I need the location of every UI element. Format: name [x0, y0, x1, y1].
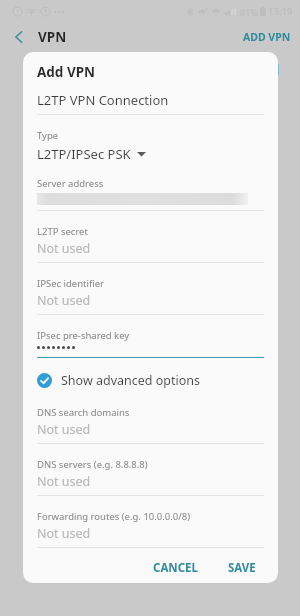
- button[interactable]: SAVE: [220, 554, 264, 582]
- staticText: L2TP secret: [37, 225, 88, 238]
- button[interactable]: IPSec identifier: [23, 277, 278, 315]
- staticText: Server address: [37, 177, 104, 190]
- staticText: DNS servers (e.g. 8.8.8.8): [37, 458, 148, 471]
- button[interactable]: DNS servers (e.g. 8.8.8.8): [23, 458, 278, 496]
- button[interactable]: CANCEL: [145, 554, 206, 582]
- button[interactable]: ADD VPN: [234, 24, 300, 50]
- button[interactable]: L2TP/IPSec PSK: [23, 144, 278, 164]
- button[interactable]: Forwarding routes (e.g. 10.0.0.0/8): [23, 510, 278, 548]
- staticText: ADD VPN: [243, 30, 291, 44]
- button[interactable]: Show advanced options: [23, 369, 278, 392]
- staticText: Not used: [37, 292, 91, 309]
- staticText: Show advanced options: [61, 372, 201, 389]
- staticText: Not used: [37, 473, 91, 490]
- staticText: 81%: [240, 6, 258, 18]
- button[interactable]: Back: [8, 26, 30, 48]
- staticText: Type: [37, 129, 59, 142]
- staticText: L2TP/IPSec PSK: [37, 145, 131, 163]
- staticText: Not used: [37, 421, 91, 438]
- staticText: Add VPN: [37, 63, 96, 81]
- staticText: SAVE: [228, 560, 256, 576]
- staticText: IPSec identifier: [37, 277, 104, 290]
- staticText: Not used: [37, 240, 91, 257]
- staticText: IPsec pre-shared key: [37, 329, 130, 342]
- staticText: CANCEL: [153, 560, 198, 576]
- staticText: DNS search domains: [37, 406, 130, 419]
- staticText: VPN: [38, 28, 67, 46]
- button[interactable]: DNS search domains: [23, 406, 278, 444]
- staticText: L2TP VPN Connection: [37, 91, 169, 109]
- button[interactable]: L2TP secret: [23, 225, 278, 263]
- staticText: Forwarding routes (e.g. 10.0.0.0/8): [37, 510, 191, 523]
- staticText: Not used: [37, 525, 91, 542]
- staticText: 13:19: [268, 5, 293, 18]
